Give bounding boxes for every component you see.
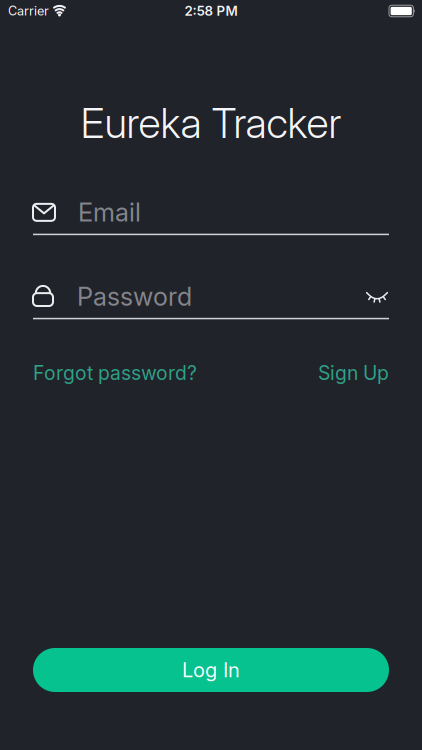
staticText: Sign Up <box>318 361 389 385</box>
button[interactable]: Email <box>33 197 389 235</box>
staticText: Log In <box>182 658 240 682</box>
staticText: Forgot password? <box>33 361 197 385</box>
button[interactable]: Log In <box>33 648 389 692</box>
staticText: Eureka Tracker <box>80 98 341 148</box>
button[interactable]: Sign Up <box>318 361 389 385</box>
button[interactable]: Password <box>33 281 192 312</box>
button[interactable]: Show password <box>371 291 389 301</box>
staticText: 2:58 PM <box>184 3 237 19</box>
staticText: Password <box>77 281 192 312</box>
button[interactable]: Forgot password? <box>33 361 197 385</box>
staticText: Email <box>78 197 141 228</box>
staticText: Carrier <box>8 3 49 19</box>
